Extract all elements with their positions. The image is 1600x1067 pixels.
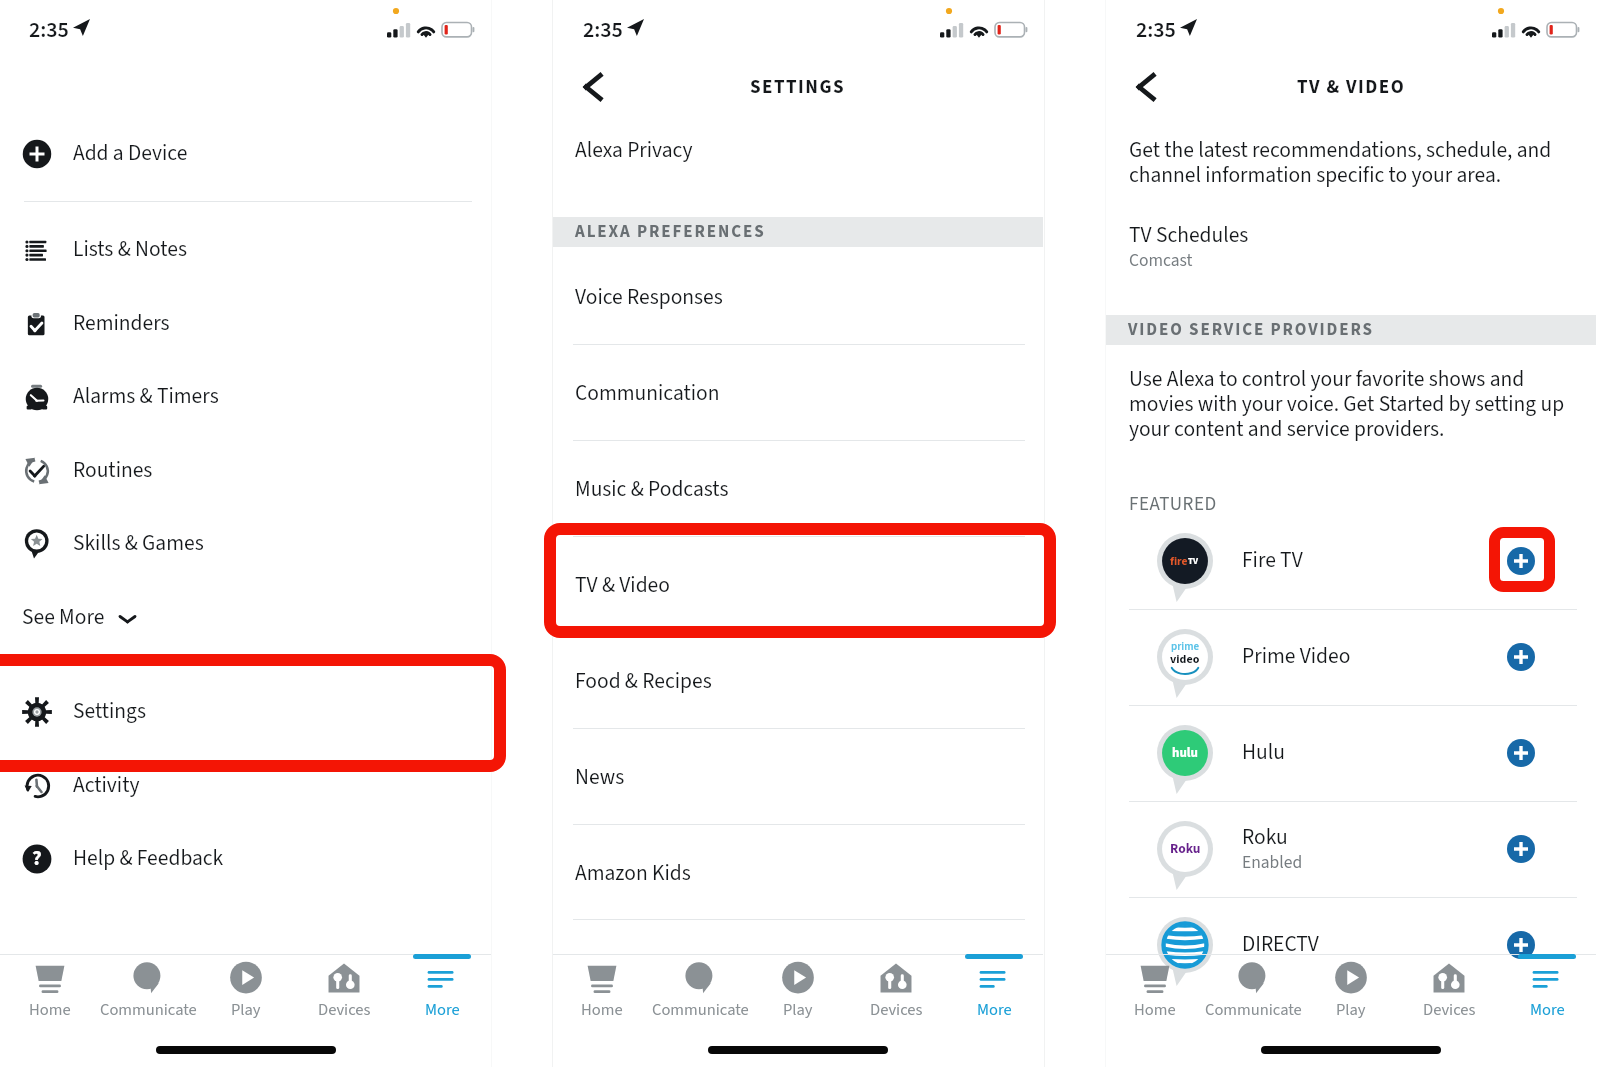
staticText: Play [783,1000,813,1021]
button[interactable]: More [393,954,491,1033]
button[interactable]: Add Fire TV [1507,547,1535,575]
staticText: 2:35 [29,16,69,45]
staticText: Hulu [1242,739,1285,767]
button[interactable]: Devices [1400,954,1498,1033]
button[interactable]: Add DIRECTV [1507,931,1535,959]
staticText: Help & Feedback [73,845,224,873]
button[interactable]: Play [197,954,295,1033]
button[interactable]: Music & Podcasts [553,442,1043,538]
staticText: Enabled [1242,852,1303,875]
staticText: Devices [1423,1000,1476,1021]
button[interactable]: Voice Responses [553,250,1043,346]
button[interactable]: Communicate [99,954,197,1033]
button[interactable]: Devices [847,954,945,1033]
button[interactable]: Activity [0,749,491,823]
staticText: VIDEO SERVICE PROVIDERS [1128,319,1374,341]
staticText: Routines [73,457,153,485]
button[interactable]: Communicate [651,954,749,1033]
button[interactable]: Back [571,64,617,110]
staticText: Devices [870,1000,923,1021]
staticText: Play [231,1000,261,1021]
button[interactable]: More [1498,954,1596,1033]
staticText: fire [1170,554,1188,569]
button[interactable]: Amazon Kids [553,826,1043,922]
staticText: 2:35 [1136,16,1176,45]
staticText: Roku [1242,824,1288,852]
staticText: Home [29,1000,71,1021]
button[interactable]: Add Roku [1507,835,1535,863]
button[interactable]: Add a Device [0,117,491,191]
staticText: Food & Recipes [575,668,712,696]
button[interactable]: Add Hulu [1507,739,1535,767]
button[interactable]: Add Prime Video [1507,643,1535,671]
button[interactable]: Home [0,954,99,1033]
button[interactable]: Routines [0,434,491,508]
staticText: Play [1336,1000,1366,1021]
button[interactable]: hulu [1106,705,1596,801]
button[interactable]: DIRECTV [1106,897,1596,993]
staticText: Home [581,1000,623,1021]
staticText: TV & VIDEO [1297,75,1406,100]
staticText: ALEXA PREFERENCES [575,221,766,243]
staticText: TV Schedules [1129,222,1249,250]
button[interactable]: Roku [1106,801,1596,897]
button[interactable]: Back [1124,64,1170,110]
staticText: prime [1171,640,1200,654]
staticText: Alexa Privacy [575,137,693,165]
button[interactable]: TV Schedules [1106,212,1596,283]
button[interactable]: TV & Video [553,538,1043,634]
staticText: Settings [73,698,146,726]
staticText: More [977,1000,1012,1021]
button[interactable]: ? [0,822,491,896]
button[interactable]: See More [0,581,491,655]
button[interactable]: Communicate [1204,954,1302,1033]
button[interactable]: Reminders [0,287,491,361]
staticText: 2:35 [583,16,623,45]
staticText: Voice Responses [575,284,723,312]
staticText: Reminders [73,310,170,338]
staticText: Comcast [1129,250,1193,273]
staticText: hulu [1172,745,1198,762]
staticText: Skills & Games [73,530,204,558]
staticText: FEATURED [1129,492,1217,517]
button[interactable]: Alarms & Timers [0,360,491,434]
button[interactable]: Play [1302,954,1400,1033]
staticText: video [1170,652,1200,668]
staticText: TV & Video [575,572,670,600]
button[interactable]: Play [749,954,847,1033]
staticText: Lists & Notes [73,236,187,264]
staticText: Prime Video [1242,643,1351,671]
button[interactable]: Home [1106,954,1204,1033]
staticText: Communication [575,380,720,408]
button[interactable]: Devices [295,954,393,1033]
button[interactable]: Alexa Privacy [553,103,1043,199]
staticText: Get the latest recommendations, schedule… [1129,139,1584,189]
staticText: Fire TV [1242,547,1303,575]
button[interactable]: Food & Recipes [553,634,1043,730]
staticText: Alarms & Timers [73,383,219,411]
staticText: More [425,1000,460,1021]
staticText: Activity [73,772,140,800]
button[interactable]: News [553,730,1043,826]
button[interactable]: prime [1106,609,1596,705]
staticText: Roku [1170,840,1201,858]
button[interactable]: Home [553,954,651,1033]
staticText: DIRECTV [1242,931,1319,959]
button[interactable]: Lists & Notes [0,213,491,287]
staticText: News [575,764,625,792]
staticText: See More [22,604,105,632]
staticText: Music & Podcasts [575,476,729,504]
staticText: Communicate [1205,1000,1302,1021]
button[interactable]: fire [1106,513,1596,609]
staticText: More [1530,1000,1565,1021]
staticText: Use Alexa to control your favorite shows… [1129,368,1589,443]
staticText: Amazon Kids [575,860,691,888]
staticText: SETTINGS [750,75,846,100]
staticText: ? [32,845,42,872]
staticText: Communicate [652,1000,749,1021]
button[interactable]: Settings [0,675,491,749]
staticText: TV [1188,556,1199,568]
button[interactable]: Skills & Games [0,507,491,581]
button[interactable]: Communication [553,346,1043,442]
button[interactable]: More [945,954,1043,1033]
